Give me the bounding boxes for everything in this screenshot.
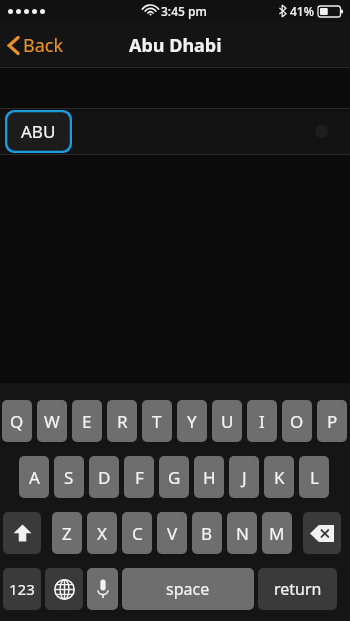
button[interactable]: B [192, 512, 222, 554]
button[interactable]: space [122, 568, 254, 610]
staticText: U [221, 410, 234, 433]
button[interactable]: Clear text [315, 125, 328, 138]
button[interactable]: I [247, 400, 277, 442]
button[interactable]: ABU [5, 110, 72, 153]
staticText: V [167, 522, 178, 545]
button[interactable]: L [299, 456, 329, 498]
staticText: A [29, 466, 40, 489]
button[interactable]: P [317, 400, 347, 442]
staticText: 123 [9, 579, 35, 599]
staticText: N [236, 522, 249, 545]
staticText: ABU [21, 120, 56, 143]
button[interactable]: Shift [3, 512, 41, 554]
button[interactable]: Backspace [303, 512, 341, 554]
button[interactable]: R [107, 400, 137, 442]
button[interactable]: V [157, 512, 187, 554]
staticText: O [290, 410, 304, 433]
staticText: S [64, 466, 74, 489]
button[interactable]: Dictate [87, 568, 118, 610]
button[interactable]: T [142, 400, 172, 442]
button[interactable]: Z [52, 512, 82, 554]
button[interactable]: Back [8, 33, 64, 58]
staticText: C [132, 522, 143, 545]
button[interactable]: D [89, 456, 119, 498]
staticText: W [44, 410, 60, 433]
button[interactable]: return [258, 568, 337, 610]
staticText: space [166, 578, 210, 600]
button[interactable]: E [72, 400, 102, 442]
staticText: T [152, 410, 162, 433]
button[interactable]: Switch keyboard [45, 568, 83, 610]
staticText: 3:45 pm [161, 3, 207, 19]
button[interactable]: G [159, 456, 189, 498]
button[interactable]: J [229, 456, 259, 498]
button[interactable]: A [19, 456, 49, 498]
staticText: K [274, 466, 285, 489]
staticText: L [310, 466, 319, 489]
staticText: Y [187, 410, 197, 433]
staticText: I [259, 410, 265, 433]
staticText: F [135, 466, 144, 489]
button[interactable]: M [262, 512, 292, 554]
staticText: return [274, 578, 322, 600]
staticText: R [117, 410, 128, 433]
staticText: Back [23, 33, 64, 58]
button[interactable]: W [37, 400, 67, 442]
staticText: X [97, 522, 107, 545]
staticText: Abu Dhabi [129, 33, 222, 58]
staticText: Z [62, 522, 72, 545]
staticText: B [201, 522, 213, 545]
staticText: P [327, 410, 338, 433]
button[interactable]: O [282, 400, 312, 442]
button[interactable]: Q [2, 400, 32, 442]
staticText: 41% [290, 3, 314, 19]
staticText: M [269, 522, 285, 545]
button[interactable]: 123 [3, 568, 41, 610]
staticText: H [203, 466, 216, 489]
button[interactable]: C [122, 512, 152, 554]
staticText: Q [10, 410, 24, 433]
button[interactable]: S [54, 456, 84, 498]
staticText: D [98, 466, 111, 489]
staticText: G [168, 466, 181, 489]
button[interactable]: N [227, 512, 257, 554]
button[interactable]: U [212, 400, 242, 442]
button[interactable]: H [194, 456, 224, 498]
button[interactable]: Y [177, 400, 207, 442]
staticText: J [242, 466, 247, 489]
button[interactable]: K [264, 456, 294, 498]
button[interactable]: F [124, 456, 154, 498]
button[interactable]: X [87, 512, 117, 554]
staticText: E [82, 410, 92, 433]
